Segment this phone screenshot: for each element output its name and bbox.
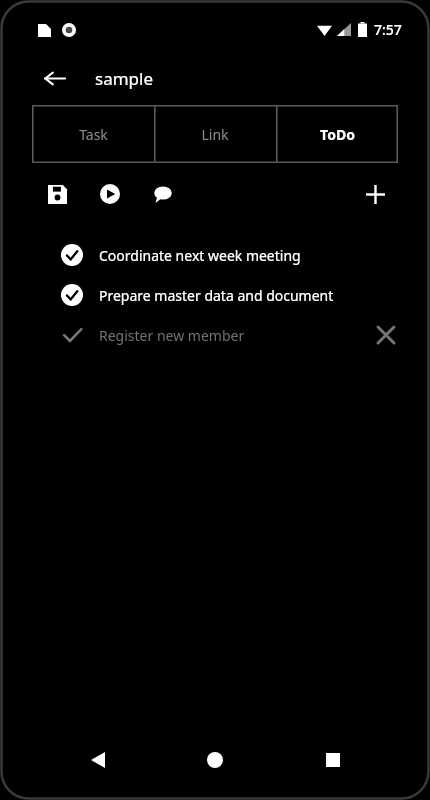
button[interactable]: Comment <box>146 177 180 211</box>
button[interactable]: Link <box>154 105 276 163</box>
staticText: Prepare master data and document <box>99 286 370 305</box>
staticText: ToDo <box>320 125 355 144</box>
button[interactable]: Coordinate next week meeting <box>2 235 428 275</box>
button[interactable]: Back <box>76 738 120 782</box>
button[interactable]: Register new member <box>2 315 428 355</box>
button[interactable]: Home <box>193 738 237 782</box>
button[interactable]: Back <box>34 58 74 98</box>
button[interactable]: ToDo <box>276 105 398 163</box>
button[interactable]: Recent apps <box>311 738 355 782</box>
button[interactable]: Task <box>32 105 154 163</box>
button[interactable]: Add <box>358 177 392 211</box>
staticText: 7:57 <box>374 20 402 39</box>
button[interactable]: Play <box>93 177 127 211</box>
staticText: sample <box>95 67 154 90</box>
staticText: Coordinate next week meeting <box>99 246 370 265</box>
button[interactable]: Prepare master data and document <box>2 275 428 315</box>
staticText: Task <box>79 125 108 144</box>
button[interactable]: Delete <box>370 319 402 351</box>
staticText: Link <box>201 125 229 144</box>
button[interactable]: Save <box>40 177 74 211</box>
staticText: Register new member <box>99 326 370 345</box>
